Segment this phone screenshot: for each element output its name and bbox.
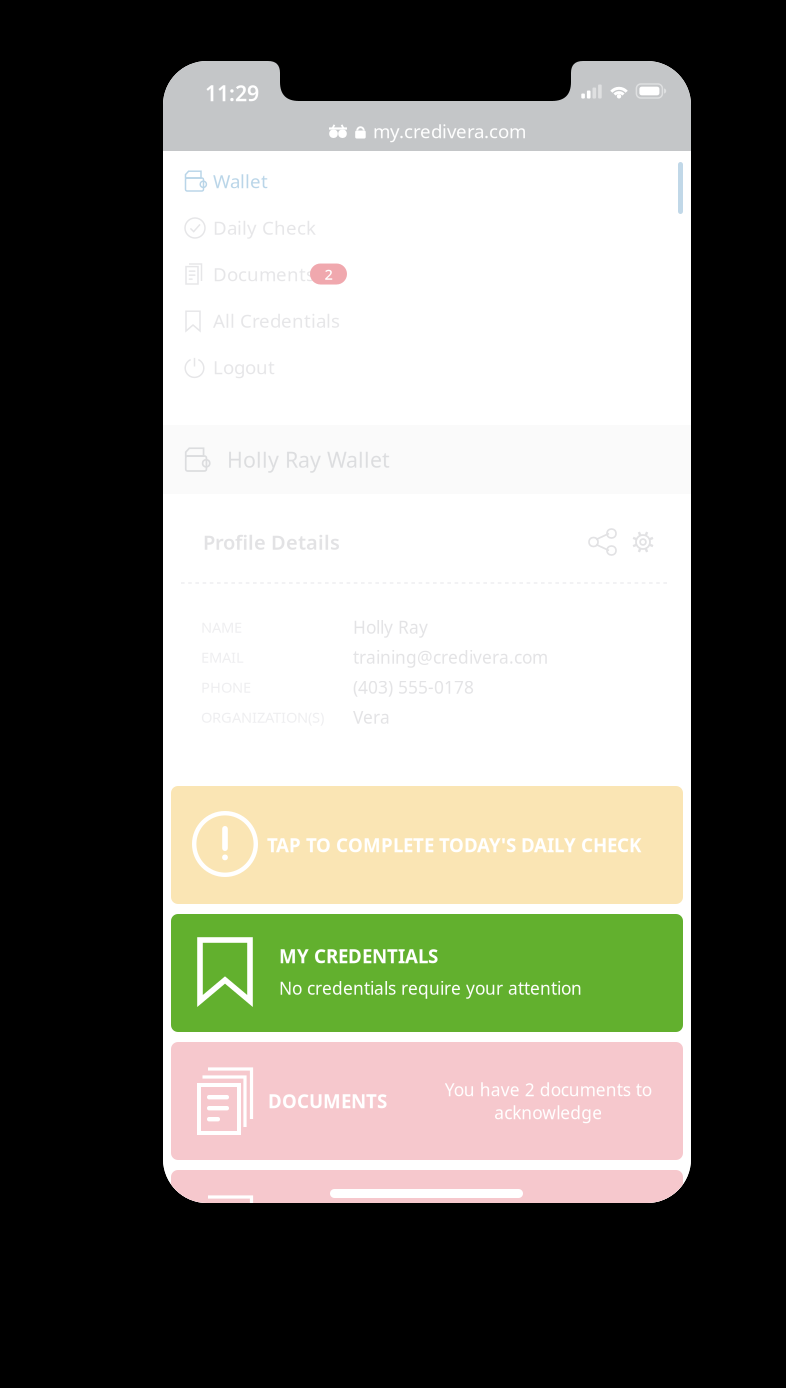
staticText: training@credivera.com [353, 645, 548, 668]
staticText: DOCUMENTS [268, 1089, 387, 1113]
staticText: TAP TO COMPLETE TODAY'S DAILY CHECK [267, 833, 641, 857]
staticText: Vera [353, 705, 390, 728]
staticText: Documents [213, 262, 315, 286]
button[interactable]: Share [589, 528, 617, 556]
button[interactable]: Wallet [163, 158, 691, 204]
button[interactable]: MY CREDENTIALS [171, 914, 683, 1032]
button[interactable]: All Credentials [163, 297, 691, 343]
staticText: ORGANIZATION(S) [201, 707, 324, 727]
staticText: Holly Ray Wallet [227, 445, 390, 474]
staticText: Daily Check [213, 215, 316, 240]
staticText: Holly Ray [353, 615, 428, 638]
staticText: All Credentials [213, 308, 340, 333]
staticText: (403) 555-0178 [353, 675, 474, 698]
staticText: PHONE [201, 677, 251, 697]
staticText: You have 2 documents to acknowledge [444, 1078, 651, 1124]
staticText: Profile Details [203, 529, 340, 555]
button[interactable] [171, 1170, 683, 1288]
staticText: 11:29 [205, 79, 259, 107]
staticText: Wallet [213, 169, 268, 193]
button[interactable]: Settings [629, 528, 657, 556]
staticText: my.credivera.com [373, 119, 526, 143]
button[interactable]: DOCUMENTS [171, 1042, 683, 1160]
staticText: Logout [213, 355, 275, 379]
staticText: No credentials require your attention [279, 976, 582, 999]
staticText: 2 [324, 264, 332, 284]
staticText: MY CREDENTIALS [279, 944, 438, 968]
button[interactable]: Documents [163, 251, 691, 297]
staticText: EMAIL [201, 647, 244, 667]
button[interactable]: TAP TO COMPLETE TODAY'S DAILY CHECK [171, 786, 683, 904]
staticText: NAME [201, 617, 242, 637]
button[interactable]: Daily Check [163, 204, 691, 250]
